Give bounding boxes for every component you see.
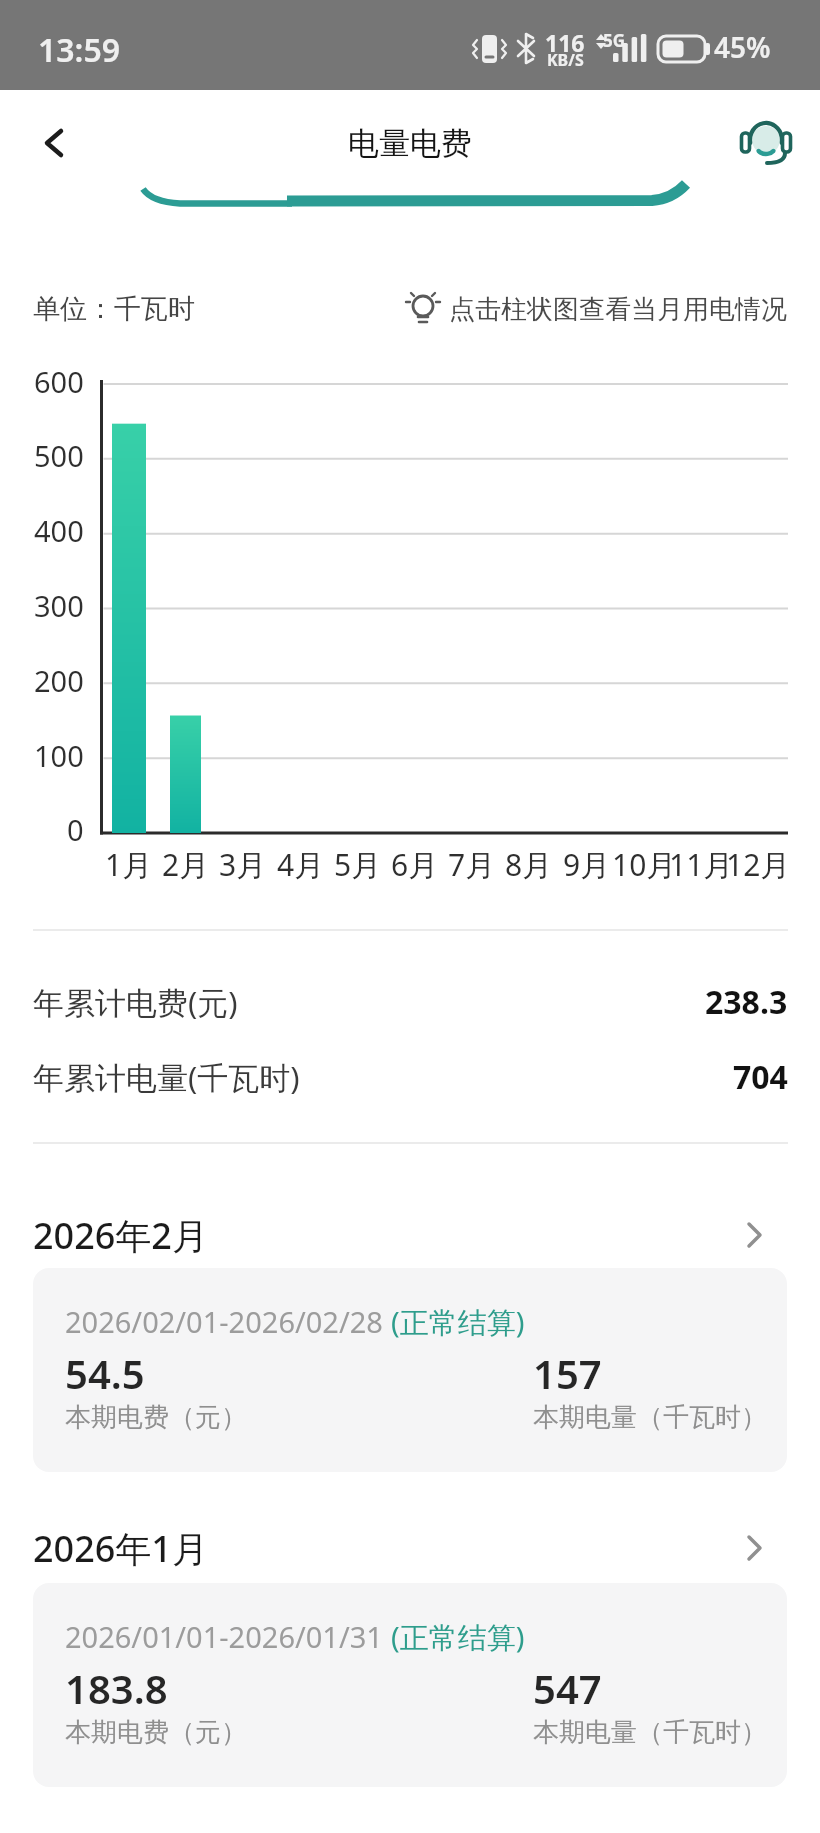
staticText: 116 [545,27,585,53]
staticText: 157 [533,1346,602,1400]
staticText: 点击柱状图查看当月用电情况 [449,293,787,326]
staticText: 5月 [334,844,382,885]
staticText: 704 [733,1055,788,1099]
staticText: 200 [34,661,84,700]
staticText: (正常结算) [391,1302,525,1342]
staticText: KB/S [547,49,584,67]
staticText: 2026/02/01-2026/02/28 [65,1302,391,1341]
button[interactable]: 2026/01/01-2026/01/31 [33,1583,787,1787]
staticText: (正常结算) [391,1617,525,1657]
staticText: 238.3 [705,980,788,1024]
staticText: 6月 [391,844,439,885]
staticText: 2026年1月 [33,1524,208,1573]
staticText: 3月 [219,844,267,885]
staticText: 100 [34,736,84,775]
button[interactable]: 2026年2月 [33,1208,787,1262]
staticText: 500 [34,436,84,475]
staticText: 1月 [105,844,153,885]
staticText: 0 [67,810,84,849]
staticText: 45% [714,28,771,66]
staticText: 12月 [726,844,791,885]
staticText: 8月 [505,844,553,885]
staticText: 本期电费（元） [65,1716,247,1749]
staticText: 400 [34,511,84,550]
staticText: 本期电量（千瓦时） [533,1401,767,1434]
staticText: 单位：千瓦时 [33,292,195,326]
staticText: 本期电量（千瓦时） [533,1716,767,1749]
staticText: 电量电费 [348,124,472,163]
staticText: 11月 [669,844,734,885]
staticText: 13:59 [38,28,121,72]
staticText: 本期电费（元） [65,1401,247,1434]
staticText: 2月 [162,844,210,885]
button[interactable] [112,423,146,833]
staticText: 183.8 [65,1661,168,1715]
staticText: 10月 [612,844,677,885]
staticText: 2026/01/01-2026/01/31 [65,1617,391,1656]
staticText: 547 [533,1661,602,1715]
button[interactable] [736,108,798,172]
staticText: 4月 [277,844,325,885]
button[interactable] [170,715,201,833]
button[interactable] [25,112,87,174]
staticText: 年累计电量(千瓦时) [33,1056,300,1098]
staticText: 5G [603,29,626,49]
staticText: 600 [34,362,84,401]
staticText: 300 [34,586,84,625]
staticText: 7月 [448,844,496,885]
staticText: 9月 [563,844,611,885]
staticText: 2026年2月 [33,1211,208,1260]
staticText: 年累计电费(元) [33,981,238,1023]
staticText: 54.5 [65,1346,145,1400]
button[interactable]: 2026年1月 [33,1521,787,1575]
button[interactable]: 2026/02/01-2026/02/28 [33,1268,787,1472]
